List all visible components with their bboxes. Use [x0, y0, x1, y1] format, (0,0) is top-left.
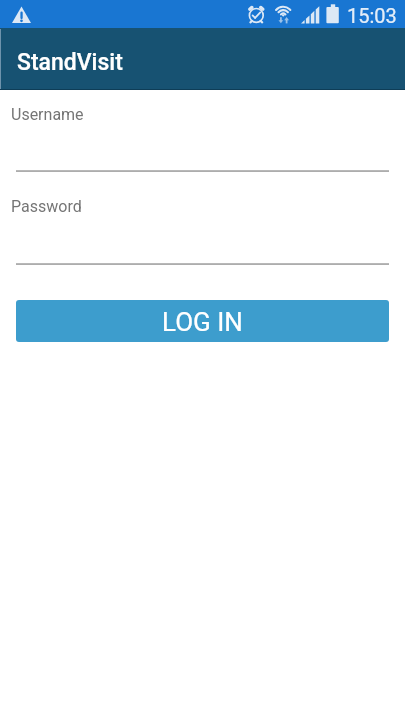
staticText: StandVisit	[17, 49, 123, 76]
staticText: Password	[11, 197, 82, 216]
other: Status icons: warning, alarm set, Wi-Fi,…	[0, 0, 405, 28]
staticText: 15:03	[347, 4, 397, 27]
button[interactable]: Username	[0, 97, 405, 172]
button[interactable]: Password	[0, 189, 405, 265]
button[interactable]: LOG IN	[16, 300, 389, 342]
staticText: Username	[11, 105, 84, 124]
staticText: LOG IN	[162, 307, 243, 337]
button[interactable]: StandVisit	[8, 34, 138, 84]
